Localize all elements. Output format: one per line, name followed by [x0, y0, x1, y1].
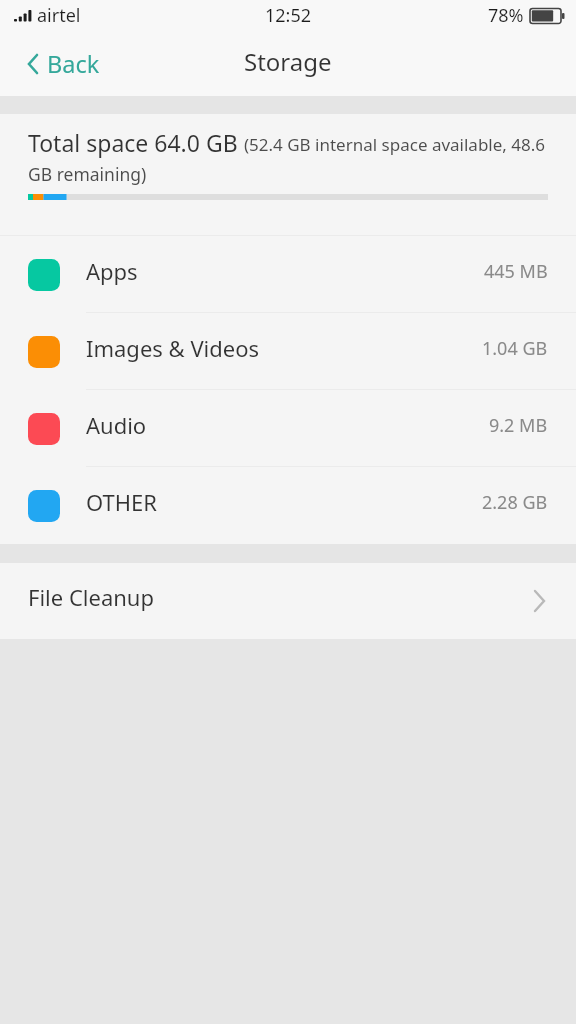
staticText: airtel — [37, 3, 81, 28]
staticText: Total space 64.0 GB — [28, 127, 244, 158]
staticText: Back — [47, 48, 100, 80]
button[interactable]: Audio — [0, 390, 576, 467]
staticText: 9.2 MB — [489, 413, 548, 438]
button[interactable]: File Cleanup — [0, 563, 576, 639]
staticText: 78% — [488, 3, 524, 28]
staticText: 445 MB — [484, 259, 548, 284]
button[interactable]: Apps — [0, 236, 576, 313]
staticText: GB remaining) — [28, 162, 147, 186]
staticText: Apps — [86, 256, 138, 286]
staticText: Storage — [244, 45, 332, 78]
staticText: File Cleanup — [28, 582, 154, 612]
button[interactable]: Back — [0, 40, 108, 88]
staticText: Images & Videos — [86, 333, 260, 363]
staticText: 2.28 GB — [482, 490, 548, 515]
staticText: (52.4 GB internal space available, 48.6 — [244, 133, 546, 156]
staticText: Audio — [86, 410, 147, 440]
button[interactable]: OTHER — [0, 467, 576, 544]
staticText: 1.04 GB — [482, 336, 548, 361]
staticText: 12:52 — [265, 3, 312, 28]
staticText: OTHER — [86, 487, 157, 517]
button[interactable]: Images & Videos — [0, 313, 576, 390]
